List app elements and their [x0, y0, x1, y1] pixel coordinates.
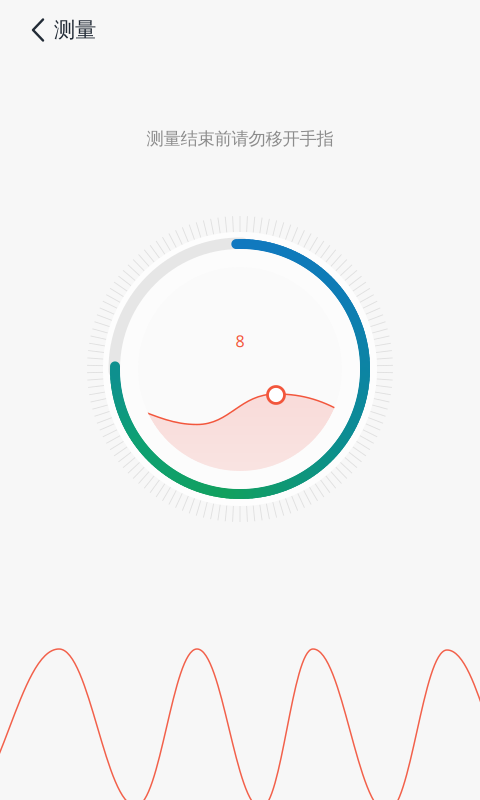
button[interactable]: Back: [15, 6, 53, 54]
staticText: 测量结束前请勿移开手指: [146, 128, 333, 149]
staticText: 测量: [54, 17, 96, 43]
staticText: 8: [235, 330, 244, 352]
